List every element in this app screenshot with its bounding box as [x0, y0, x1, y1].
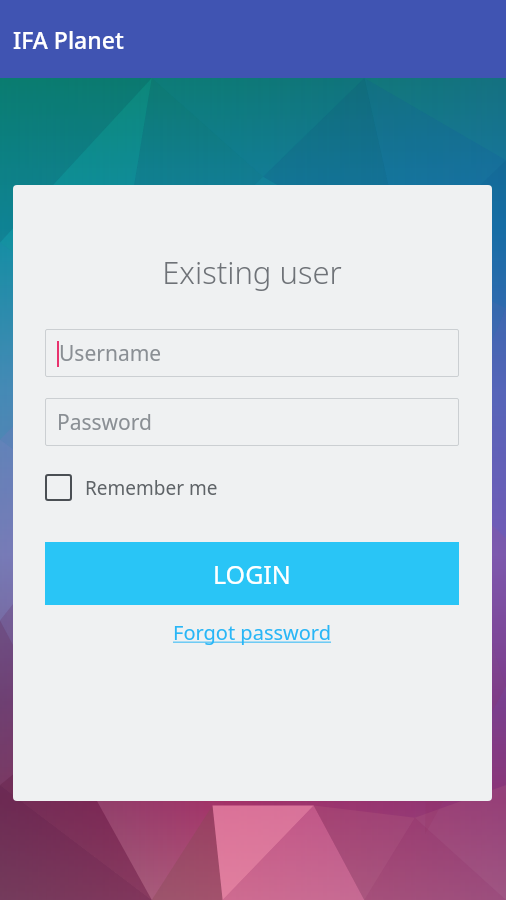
button[interactable]: LOGIN — [45, 542, 459, 605]
button[interactable]: Username — [45, 329, 459, 377]
staticText: Existing user — [45, 251, 459, 293]
button[interactable]: Password — [45, 398, 459, 446]
staticText: Password — [57, 408, 152, 437]
button[interactable]: Forgot password — [45, 619, 459, 646]
staticText: Username — [59, 339, 162, 368]
staticText: Forgot password — [173, 619, 332, 646]
staticText: IFA Planet — [13, 24, 124, 55]
staticText: Remember me — [85, 475, 218, 501]
staticText: LOGIN — [213, 557, 291, 591]
button[interactable]: Remember me — [45, 474, 226, 501]
